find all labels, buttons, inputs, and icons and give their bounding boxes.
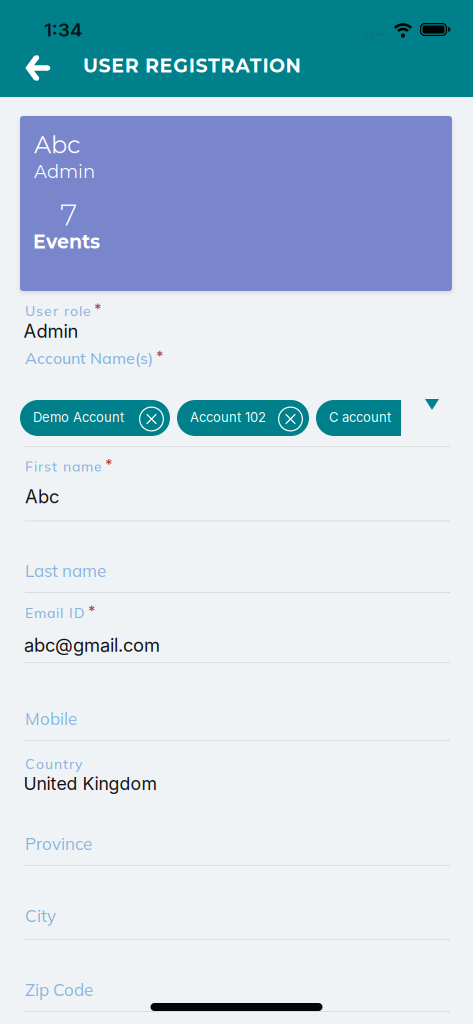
- button[interactable]: F i r s t n a m e: [25, 457, 450, 523]
- button[interactable]: Account 102: [177, 400, 309, 436]
- button[interactable]: Last name: [25, 560, 450, 595]
- staticText: USER REGISTRATION: [83, 54, 301, 77]
- button[interactable]: C account: [316, 400, 401, 436]
- staticText: Account Name(s): [25, 348, 153, 368]
- staticText: 7: [60, 196, 77, 233]
- staticText: *: [156, 348, 164, 365]
- staticText: City: [25, 905, 56, 926]
- staticText: Mobile: [25, 708, 77, 729]
- button[interactable]: Show all accounts: [419, 393, 445, 416]
- staticText: E m a i l I D: [25, 604, 85, 622]
- button[interactable]: Zip Code: [25, 979, 450, 1015]
- button[interactable]: Back: [18, 47, 57, 88]
- button[interactable]: Demo Account: [20, 400, 170, 436]
- staticText: United Kingdom: [23, 773, 156, 794]
- staticText: 1:34: [44, 18, 82, 41]
- button[interactable]: U s e r r o l e: [25, 302, 450, 342]
- staticText: Demo Account: [33, 409, 124, 425]
- button[interactable]: Mobile: [25, 708, 450, 744]
- staticText: Events: [33, 230, 100, 253]
- staticText: Last name: [25, 560, 106, 581]
- button[interactable]: E m a i l I D: [25, 604, 450, 665]
- staticText: Account 102: [190, 409, 266, 425]
- staticText: abc@gmail.com: [24, 634, 160, 656]
- staticText: *: [94, 301, 102, 318]
- button[interactable]: City: [25, 905, 450, 943]
- staticText: C o u n t r y: [25, 755, 82, 773]
- staticText: Province: [25, 833, 92, 854]
- staticText: C account: [329, 409, 391, 425]
- staticText: Admin: [23, 320, 78, 342]
- button[interactable]: C o u n t r y: [25, 755, 450, 795]
- staticText: *: [105, 456, 113, 473]
- staticText: F i r s t n a m e: [25, 457, 102, 475]
- button[interactable]: Province: [25, 833, 450, 869]
- staticText: Abc: [34, 130, 81, 159]
- staticText: *: [88, 603, 96, 620]
- staticText: Admin: [34, 160, 95, 182]
- staticText: Zip Code: [25, 979, 93, 1000]
- staticText: U s e r r o l e: [25, 302, 91, 320]
- staticText: Abc: [25, 485, 59, 508]
